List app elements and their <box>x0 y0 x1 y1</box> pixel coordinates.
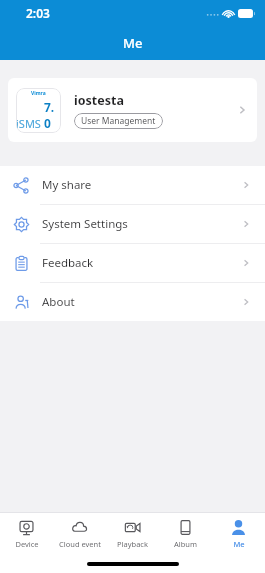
button[interactable]: My share <box>0 166 265 205</box>
button[interactable]: About <box>0 283 265 321</box>
staticText: iostesta <box>74 92 124 109</box>
staticText: About <box>42 294 240 310</box>
staticText: System Settings <box>42 216 240 232</box>
button[interactable]: Vimra <box>8 78 257 142</box>
staticText: Vimra <box>31 90 46 97</box>
button[interactable]: Cloud event <box>53 513 106 555</box>
button[interactable]: Playback <box>106 513 159 555</box>
staticText: 7.0 <box>44 99 61 131</box>
button[interactable]: System Settings <box>0 205 265 244</box>
staticText: Feedback <box>42 255 240 271</box>
staticText: User Management <box>81 115 156 127</box>
button[interactable]: Me <box>212 513 265 555</box>
staticText: Cloud event <box>59 539 101 549</box>
staticText: 2:03 <box>26 5 50 21</box>
staticText: Me <box>233 539 245 549</box>
button[interactable]: Device <box>0 513 53 555</box>
staticText: iSMS <box>16 116 44 131</box>
staticText: My share <box>42 177 240 193</box>
button[interactable]: Feedback <box>0 244 265 283</box>
staticText: Album <box>174 539 197 549</box>
staticText: Playback <box>117 539 148 549</box>
button[interactable]: Album <box>159 513 212 555</box>
staticText: Me <box>123 34 143 52</box>
staticText: Device <box>15 539 39 549</box>
